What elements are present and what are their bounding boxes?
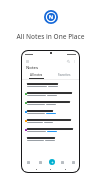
button[interactable]: App logo [44, 10, 58, 24]
button[interactable] [22, 134, 79, 143]
button[interactable]: Menu [25, 59, 29, 63]
button[interactable]: Notes [22, 157, 34, 167]
button[interactable]: Search [66, 59, 70, 63]
staticText: All Notes in One Place [16, 32, 85, 41]
button[interactable]: Settings [68, 157, 79, 167]
button[interactable]: Reminders [57, 157, 68, 167]
button[interactable] [22, 125, 79, 134]
button[interactable]: Add note [49, 159, 55, 165]
button[interactable]: Folders [34, 157, 46, 167]
staticText: Notes [26, 65, 39, 71]
button[interactable] [22, 107, 79, 116]
button[interactable] [22, 116, 79, 125]
button[interactable]: More options [72, 59, 76, 63]
staticText: All notes [30, 73, 43, 77]
button[interactable] [22, 80, 79, 89]
button[interactable]: Favorites [50, 73, 79, 79]
button[interactable] [22, 98, 79, 107]
button[interactable]: All notes [22, 73, 50, 79]
button[interactable] [22, 89, 79, 98]
staticText: Favorites [58, 73, 71, 77]
